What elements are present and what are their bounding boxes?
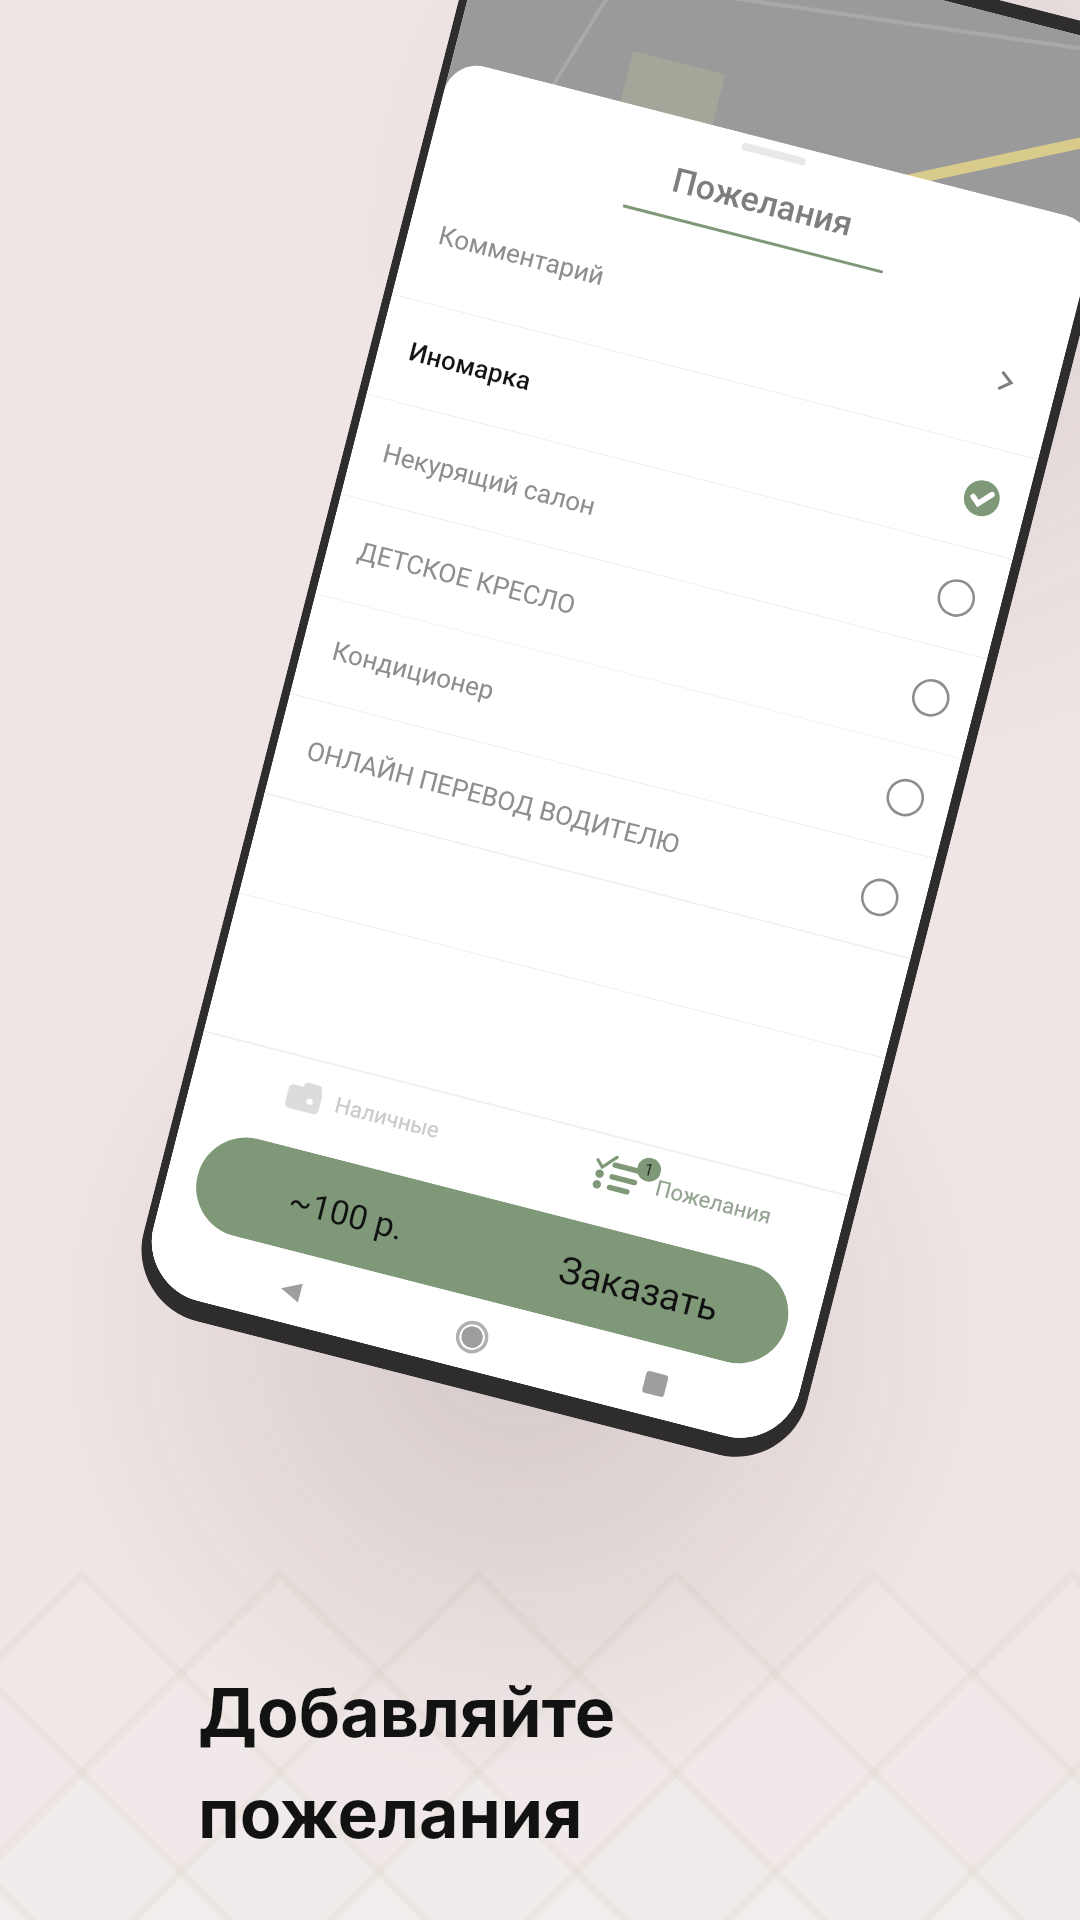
button[interactable]	[392, 194, 1064, 459]
staticText: Пожелания	[668, 159, 857, 244]
staticText: ДЕТСКОЕ КРЕСЛО	[355, 536, 579, 620]
staticText: Наличные	[332, 1092, 442, 1144]
staticText: ОНЛАЙН ПЕРЕВОД ВОДИТЕЛЮ	[304, 735, 683, 860]
staticText: Добавляйте	[198, 1671, 616, 1753]
button[interactable]	[290, 593, 962, 858]
staticText: Заказать	[554, 1247, 724, 1332]
button[interactable]: Недавние	[631, 1360, 680, 1408]
staticText: пожелания	[198, 1772, 583, 1854]
staticText: Пожелания	[653, 1175, 774, 1230]
button[interactable]: Домой	[445, 1310, 499, 1364]
staticText: Некурящий салон	[380, 438, 599, 521]
staticText: Кондиционер	[329, 636, 497, 706]
button[interactable]: Назад	[264, 1264, 318, 1317]
button[interactable]	[583, 1146, 786, 1249]
staticText: 1	[642, 1159, 656, 1181]
button[interactable]	[269, 1066, 477, 1170]
staticText: Иномарка	[406, 336, 534, 396]
button[interactable]	[185, 1127, 799, 1374]
button[interactable]	[341, 394, 1013, 659]
staticText: ~100 р.	[284, 1180, 408, 1248]
button[interactable]	[367, 294, 1038, 559]
button[interactable]	[264, 693, 936, 958]
button[interactable]	[315, 493, 987, 758]
staticText: Комментарий	[435, 220, 608, 291]
